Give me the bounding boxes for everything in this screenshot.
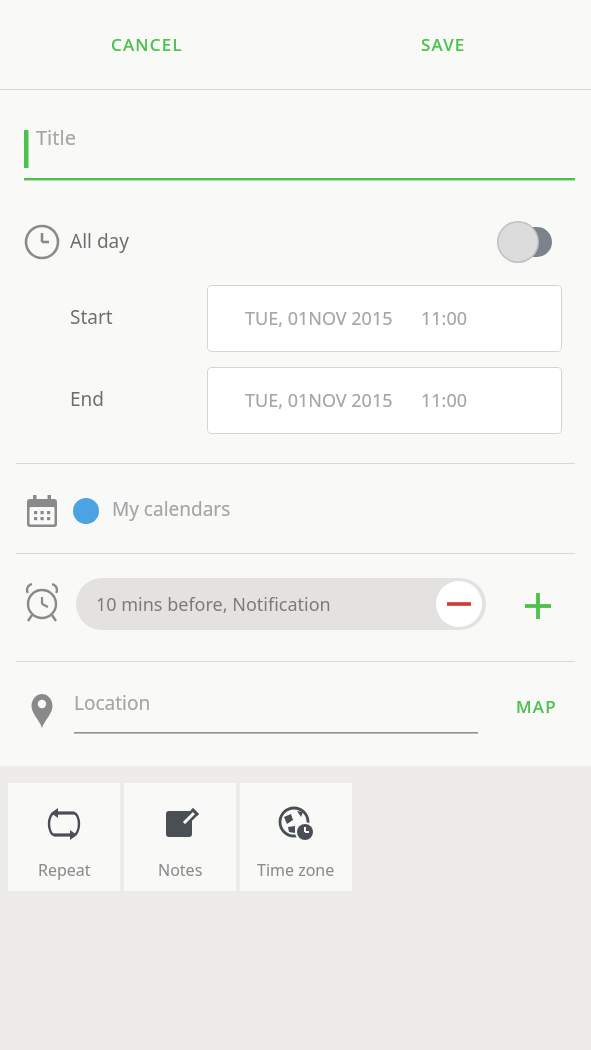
staticText: Location (74, 690, 151, 716)
button[interactable]: 10 mins before, Notification (76, 578, 486, 630)
staticText: Notes (158, 859, 203, 881)
button[interactable]: TUE, 01NOV 2015 (207, 285, 562, 352)
button[interactable]: Title (0, 112, 591, 184)
staticText: CANCEL (111, 33, 183, 56)
button[interactable]: SAVE (393, 18, 493, 70)
staticText: Repeat (38, 859, 91, 881)
button[interactable]: Notes (124, 783, 236, 891)
button[interactable]: Add reminder (512, 580, 564, 632)
button[interactable]: All day (0, 208, 591, 276)
staticText: Title (36, 124, 76, 151)
button[interactable]: TUE, 01NOV 2015 (207, 367, 562, 434)
staticText: TUE, 01NOV 2015 (245, 388, 393, 413)
staticText: Time zone (257, 859, 335, 881)
staticText: My calendars (112, 496, 231, 522)
staticText: SAVE (421, 33, 466, 56)
staticText: MAP (516, 695, 557, 718)
staticText: TUE, 01NOV 2015 (245, 306, 393, 331)
button[interactable]: CANCEL (72, 18, 222, 70)
button[interactable]: Repeat (8, 783, 120, 891)
staticText: Start (70, 304, 113, 330)
button[interactable]: Time zone (240, 783, 352, 891)
button[interactable]: Remove reminder (434, 579, 484, 629)
staticText: 11:00 (421, 388, 468, 413)
staticText: All day (70, 228, 129, 254)
button[interactable]: All day toggle (492, 222, 562, 262)
staticText: End (70, 386, 104, 412)
button[interactable]: My calendars (0, 472, 591, 550)
staticText: 10 mins before, Notification (96, 592, 331, 617)
staticText: 11:00 (421, 306, 468, 331)
button[interactable]: Location (74, 678, 478, 738)
button[interactable]: MAP (492, 684, 580, 728)
